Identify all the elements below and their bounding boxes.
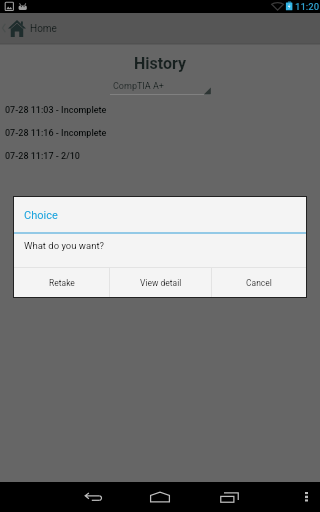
staticText: Home [30, 23, 57, 35]
staticText: 07-28 11:16 - Incomplete [5, 128, 107, 139]
staticText: History [0, 54, 320, 73]
button[interactable]: Back [78, 482, 110, 512]
button[interactable]: 07-28 11:17 - 2/10 [0, 151, 320, 174]
staticText: Retake [49, 278, 75, 288]
button[interactable]: 07-28 11:03 - Incomplete [0, 105, 320, 128]
staticText: View detail [140, 278, 182, 288]
button[interactable]: Retake [14, 268, 109, 297]
button[interactable]: Cancel [212, 268, 306, 297]
staticText: 11:20 [295, 1, 320, 12]
staticText: CompTIA A+ [113, 81, 164, 92]
staticText: Choice [24, 209, 58, 222]
button[interactable]: Home [0, 13, 320, 43]
button[interactable]: More options [294, 482, 320, 512]
staticText: 07-28 11:03 - Incomplete [5, 105, 107, 116]
staticText: What do you want? [24, 240, 105, 251]
button[interactable]: Home [144, 482, 176, 512]
button[interactable]: 07-28 11:16 - Incomplete [0, 128, 320, 151]
button[interactable]: CompTIA A+ [110, 81, 211, 95]
button[interactable]: View detail [110, 268, 211, 297]
staticText: Cancel [246, 278, 272, 288]
staticText: 07-28 11:17 - 2/10 [5, 151, 80, 162]
button[interactable]: Recent apps [213, 482, 245, 512]
